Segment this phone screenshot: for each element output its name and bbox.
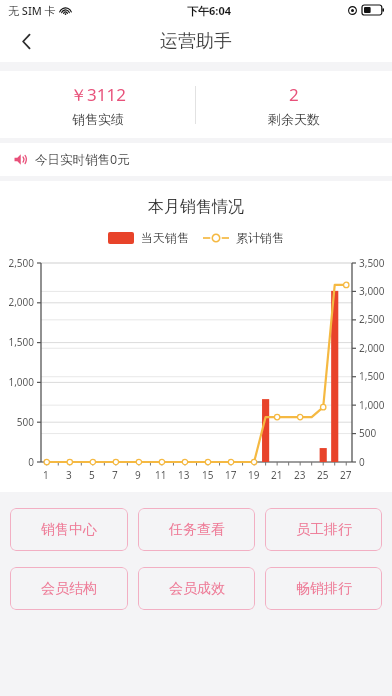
staticText: 2,000 xyxy=(359,341,385,355)
staticText: 23 xyxy=(294,468,306,482)
staticText: 1,500 xyxy=(8,335,34,349)
staticText: 销售中心 xyxy=(41,521,97,539)
staticText: 0 xyxy=(359,455,365,469)
staticText: 17 xyxy=(225,468,237,482)
staticText: 9 xyxy=(135,468,141,482)
button[interactable]: 任务查看 xyxy=(138,508,255,551)
staticText: 11 xyxy=(155,468,167,482)
button[interactable]: 员工排行 xyxy=(265,508,382,551)
staticText: 2,000 xyxy=(8,295,34,309)
staticText: 3,500 xyxy=(359,256,385,270)
button[interactable]: 会员成效 xyxy=(138,567,255,610)
staticText: 1,000 xyxy=(359,398,385,412)
staticText: 累计销售 xyxy=(236,230,284,245)
staticText: 19 xyxy=(248,468,260,482)
staticText: 员工排行 xyxy=(296,521,352,539)
staticText: 1,500 xyxy=(359,369,385,383)
staticText: 会员成效 xyxy=(169,580,225,598)
staticText: 畅销排行 xyxy=(296,580,352,598)
staticText: 21 xyxy=(271,468,283,482)
staticText: 25 xyxy=(317,468,329,482)
button[interactable]: 会员结构 xyxy=(10,567,128,610)
staticText: 销售实绩 xyxy=(72,111,124,127)
staticText: 27 xyxy=(340,468,352,482)
staticText: 当天销售 xyxy=(141,230,189,245)
staticText: ￥3112 xyxy=(70,83,126,106)
button[interactable]: Back xyxy=(6,21,46,61)
button[interactable]: ￥3112 xyxy=(0,71,195,138)
staticText: 会员结构 xyxy=(41,580,97,598)
staticText: 15 xyxy=(202,468,214,482)
button[interactable]: 畅销排行 xyxy=(265,567,382,610)
staticText: 今日实时销售0元 xyxy=(35,151,130,168)
staticText: 3 xyxy=(66,468,72,482)
staticText: 2,500 xyxy=(8,256,34,270)
staticText: 2 xyxy=(289,83,299,106)
staticText: 1 xyxy=(43,468,49,482)
staticText: 本月销售情况 xyxy=(0,197,392,217)
staticText: 5 xyxy=(89,468,95,482)
button[interactable]: 2 xyxy=(196,71,392,138)
staticText: 500 xyxy=(16,415,34,429)
staticText: 剩余天数 xyxy=(268,111,320,127)
staticText: 7 xyxy=(112,468,118,482)
button[interactable]: 今日实时销售0元 xyxy=(0,143,392,176)
staticText: 下午6:04 xyxy=(187,3,231,18)
staticText: 13 xyxy=(178,468,190,482)
staticText: 1,000 xyxy=(8,375,34,389)
staticText: 2,500 xyxy=(359,312,385,326)
staticText: 运营助手 xyxy=(160,30,232,53)
staticText: 任务查看 xyxy=(169,521,225,539)
staticText: 500 xyxy=(359,426,377,440)
staticText: 0 xyxy=(28,455,34,469)
staticText: 3,000 xyxy=(359,284,385,298)
staticText: 无 SIM 卡 xyxy=(8,3,56,18)
button[interactable]: 销售中心 xyxy=(10,508,128,551)
